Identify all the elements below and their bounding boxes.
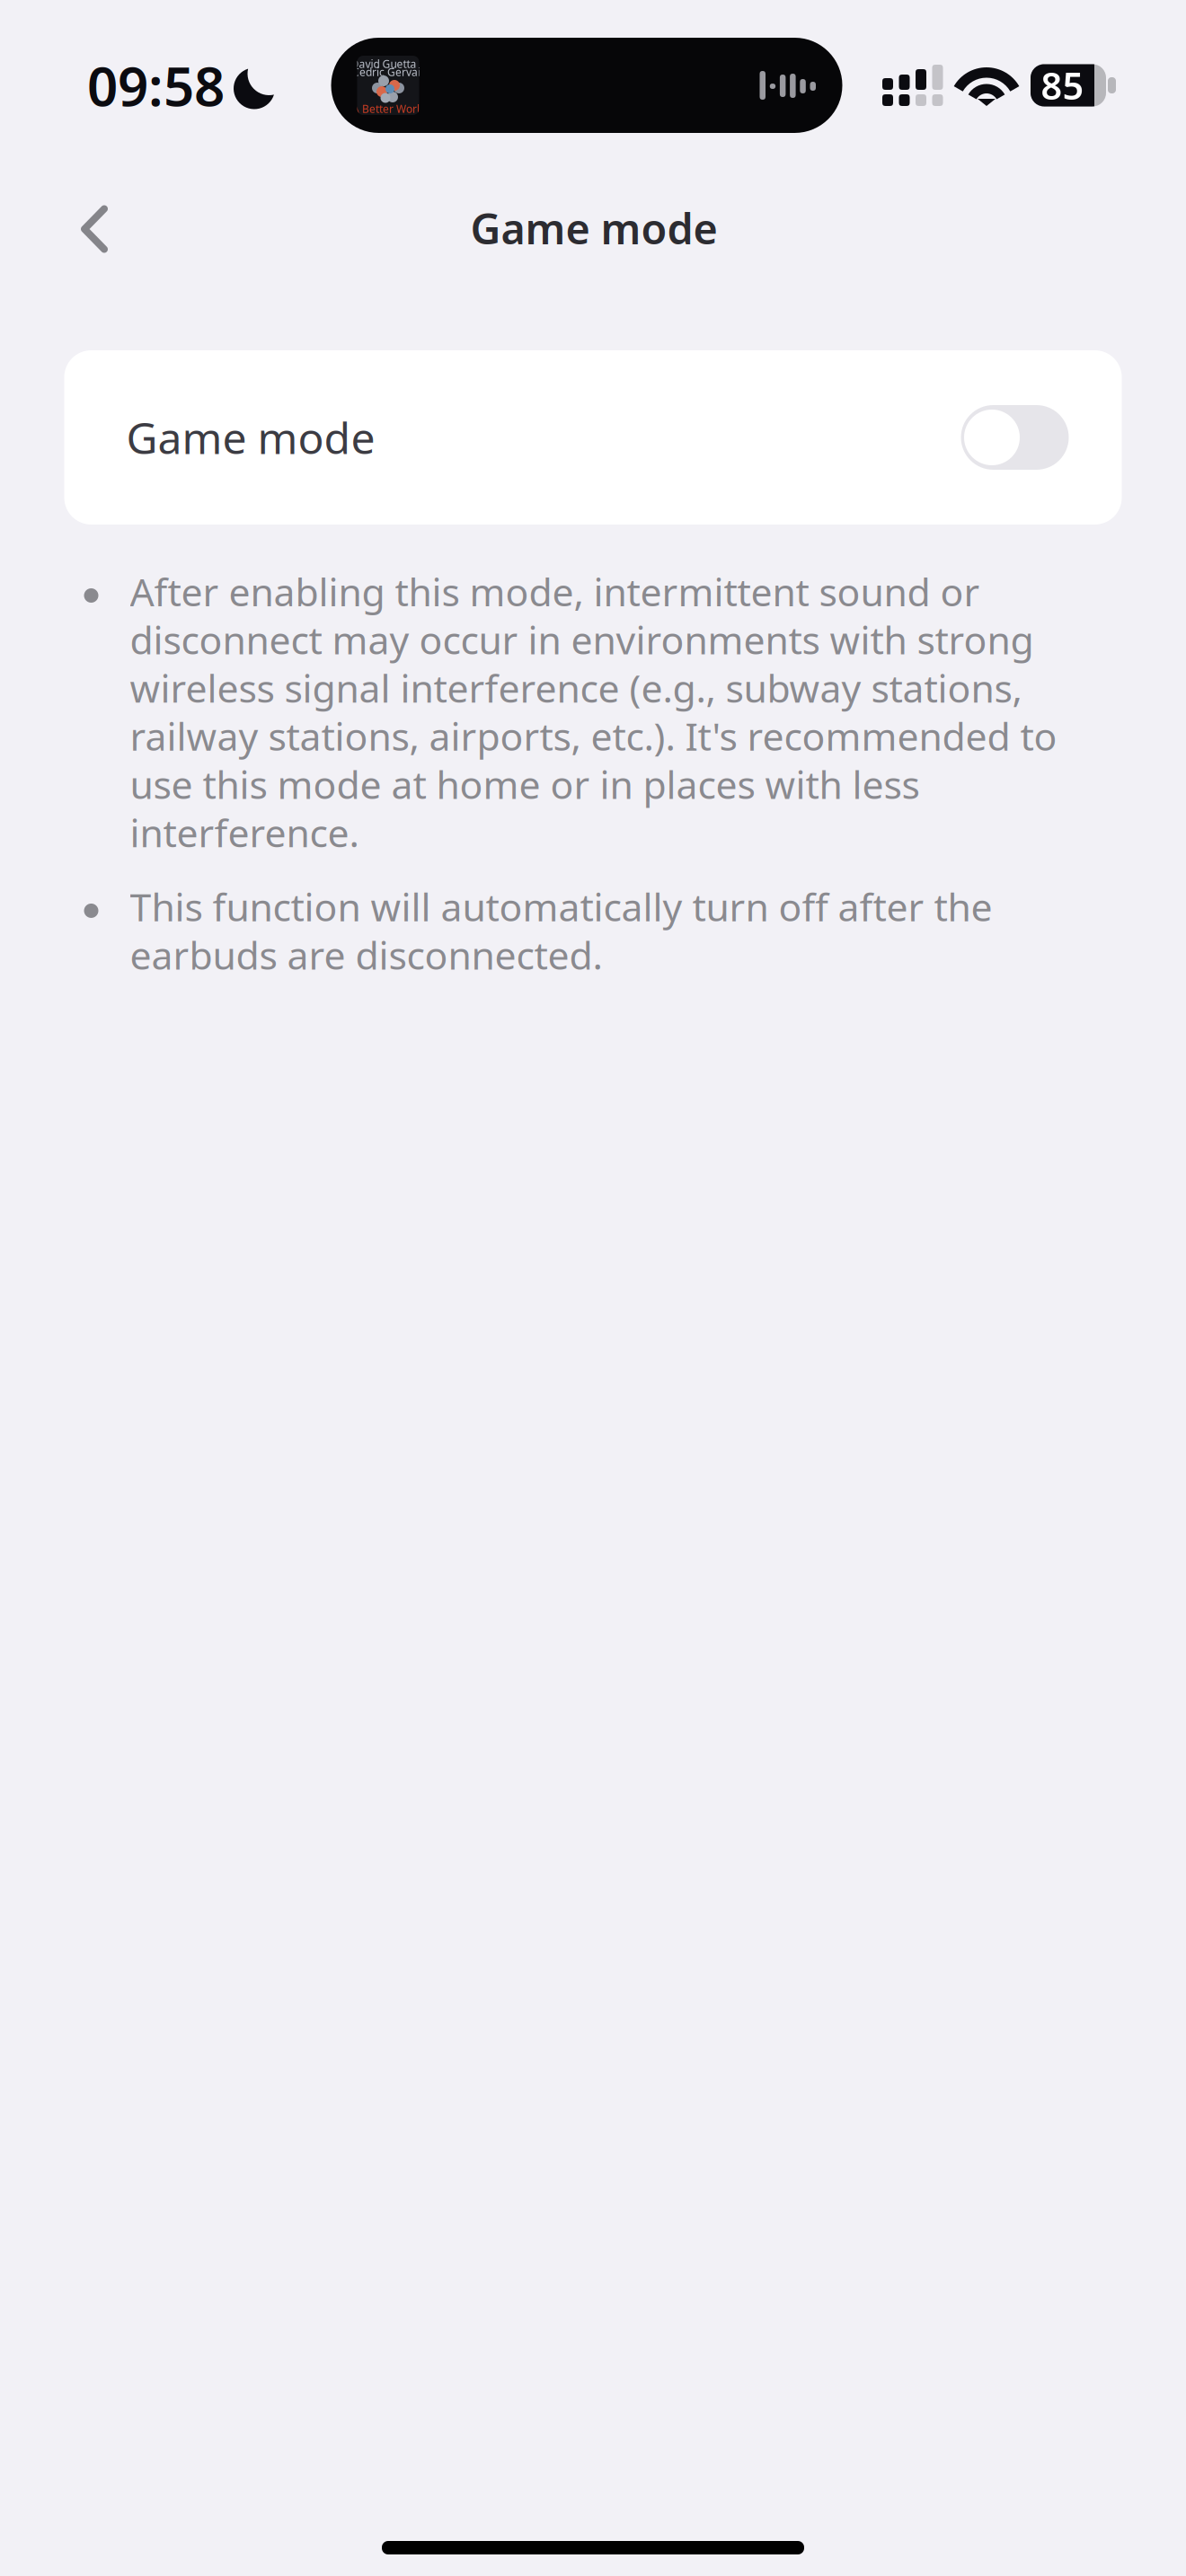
staticText: David Guetta & bbox=[351, 57, 427, 71]
staticText: Game mode bbox=[126, 409, 375, 466]
staticText: Game mode bbox=[470, 200, 717, 256]
staticText: 85 bbox=[1041, 61, 1084, 110]
staticText: This function will automatically turn of… bbox=[130, 881, 992, 980]
button[interactable]: Back bbox=[36, 180, 153, 278]
staticText: Cedric Gervais bbox=[352, 65, 426, 79]
staticText: 09:58 bbox=[87, 50, 225, 121]
staticText: A Better World bbox=[352, 101, 426, 116]
button[interactable]: Game mode bbox=[961, 405, 1069, 470]
staticText: After enabling this mode, intermittent s… bbox=[130, 566, 1057, 858]
